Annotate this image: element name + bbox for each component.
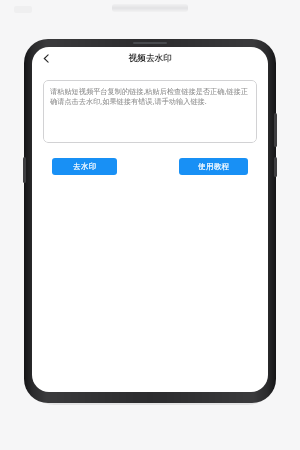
button[interactable]: 使用教程 bbox=[179, 158, 248, 175]
staticText: 去水印 bbox=[73, 162, 97, 171]
staticText: 请粘贴短视频平台复制的链接,粘贴后检查链接是否正确,链接正确请点击去水印,如果链… bbox=[50, 86, 251, 106]
button[interactable]: 请粘贴短视频平台复制的链接,粘贴后检查链接是否正确,链接正确请点击去水印,如果链… bbox=[43, 80, 257, 143]
staticText: 使用教程 bbox=[198, 162, 230, 171]
button[interactable]: 去水印 bbox=[52, 158, 117, 175]
staticText: 视频去水印 bbox=[128, 53, 172, 64]
button[interactable]: Back bbox=[36, 48, 56, 68]
